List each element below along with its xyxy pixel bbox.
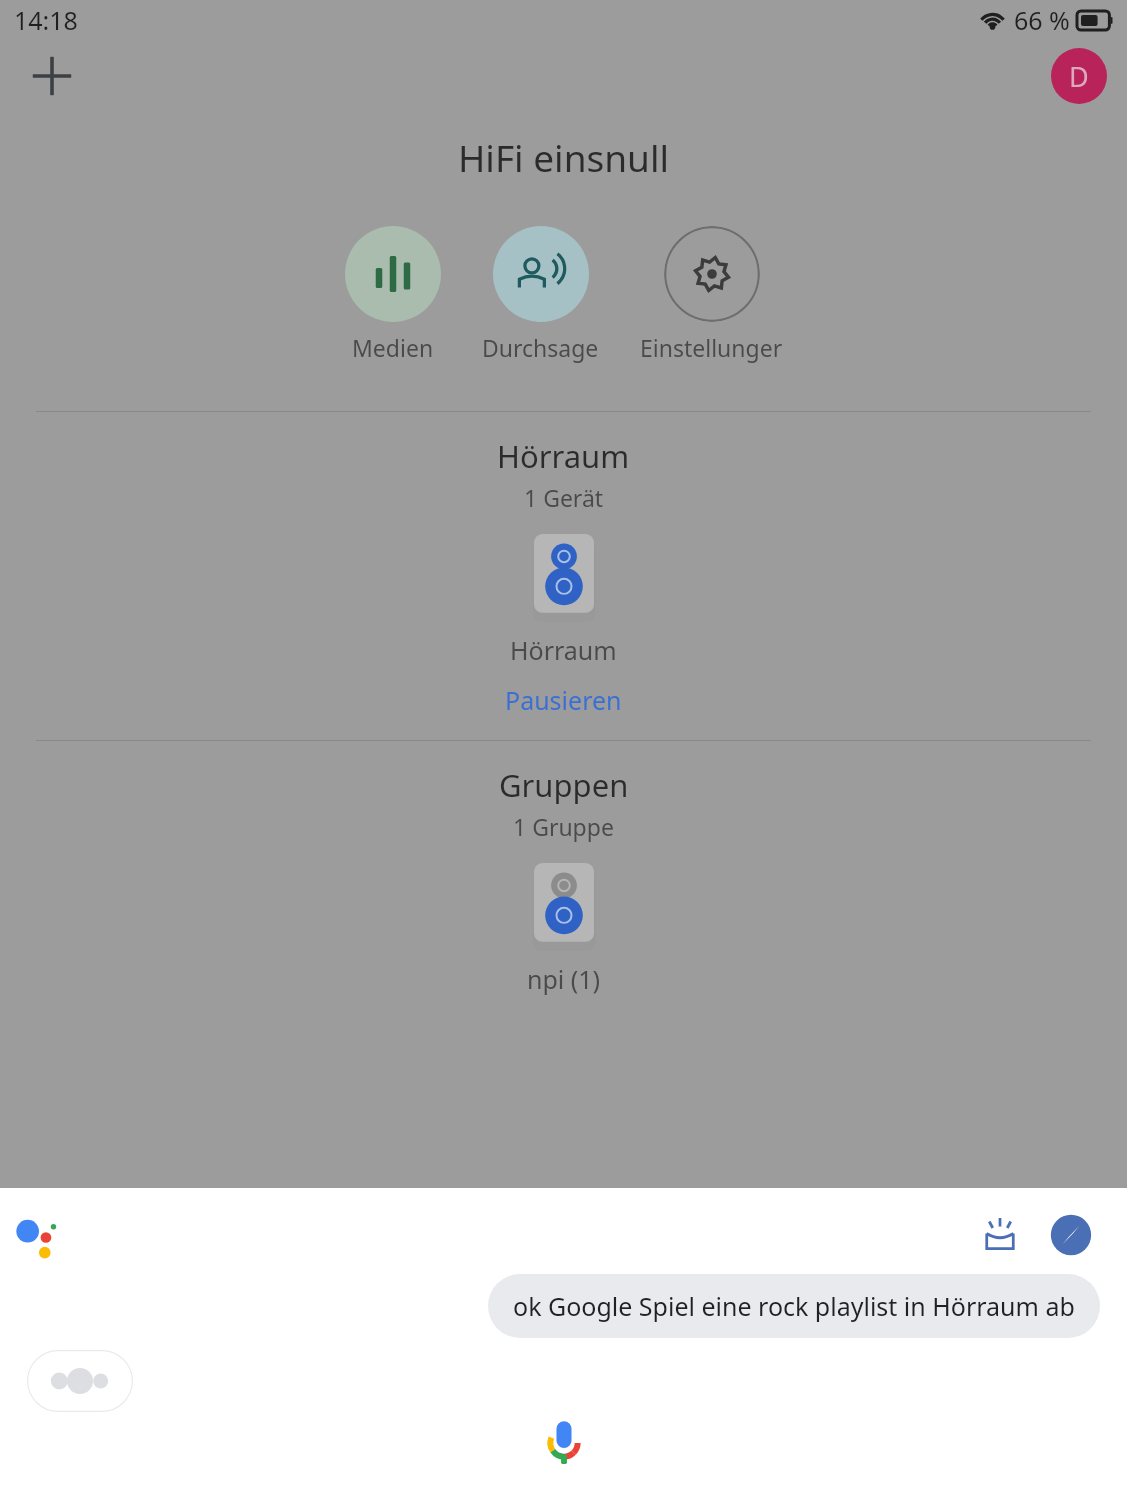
button[interactable]: Account xyxy=(1051,48,1107,104)
staticText: Gruppen xyxy=(499,764,629,806)
staticText: 66 % xyxy=(1014,3,1070,37)
button[interactable]: Google Assistant xyxy=(12,1212,70,1270)
button[interactable]: npi (1) xyxy=(531,863,597,951)
staticText: Pausieren xyxy=(505,683,622,717)
staticText: Medien xyxy=(352,332,434,363)
staticText: npi (1) xyxy=(527,962,601,996)
button[interactable]: Voice input xyxy=(529,1408,599,1478)
button[interactable]: ok Google Spiel eine rock playlist in Hö… xyxy=(488,1274,1100,1338)
staticText: Hörraum xyxy=(497,435,630,477)
staticText: D xyxy=(1069,58,1089,95)
button[interactable]: Hörraum xyxy=(531,534,597,622)
staticText: ok Google Spiel eine rock playlist in Hö… xyxy=(513,1289,1075,1323)
button[interactable]: Add device xyxy=(22,46,82,106)
button[interactable]: Einstellunger xyxy=(636,226,787,363)
button[interactable]: Durchsage xyxy=(478,226,603,363)
staticText: 14:18 xyxy=(14,3,78,37)
staticText: 1 Gerät xyxy=(524,482,604,513)
staticText: HiFi einsnull xyxy=(0,132,1127,182)
button[interactable]: Pausieren xyxy=(497,679,630,721)
staticText: Einstellunger xyxy=(640,332,783,363)
button[interactable]: Explore xyxy=(1047,1211,1095,1259)
button[interactable]: Medien xyxy=(341,226,445,363)
button[interactable] xyxy=(27,1350,133,1412)
staticText: Hörraum xyxy=(510,633,617,667)
staticText: Durchsage xyxy=(482,332,599,363)
staticText: 1 Gruppe xyxy=(513,811,614,842)
button[interactable]: Updates xyxy=(975,1210,1025,1260)
